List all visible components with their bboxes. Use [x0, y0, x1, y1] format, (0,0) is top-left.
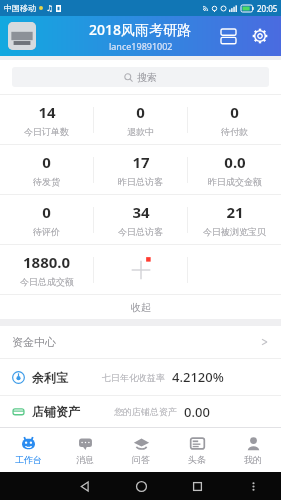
- button[interactable]: 问答: [113, 428, 169, 472]
- other: More: [225, 480, 281, 493]
- staticText: 我的: [244, 454, 262, 465]
- other: Recents: [169, 480, 225, 493]
- other: Home: [113, 480, 169, 493]
- staticText: 待付款: [221, 126, 248, 137]
- staticText: 消息: [76, 454, 94, 465]
- button[interactable]: 头条: [169, 428, 225, 472]
- staticText: 17: [132, 152, 150, 172]
- staticText: 您的店铺总资产: [114, 406, 177, 417]
- button[interactable]: Add: [94, 245, 187, 294]
- staticText: 今日总访客: [118, 226, 163, 237]
- other: Back: [57, 480, 113, 493]
- button[interactable]: 1880.0: [0, 245, 93, 294]
- button[interactable]: 17: [94, 145, 187, 194]
- staticText: 0.00: [184, 403, 210, 421]
- button[interactable]: Settings: [247, 23, 273, 49]
- staticText: 4.2120%: [172, 368, 224, 386]
- staticText: 待发货: [33, 176, 60, 187]
- button[interactable]: 我的: [225, 428, 281, 472]
- button[interactable]: 0: [0, 195, 93, 244]
- staticText: 余利宝: [32, 370, 68, 385]
- button[interactable]: Layout: [215, 23, 241, 49]
- button[interactable]: 资金中心: [12, 326, 269, 358]
- staticText: 待评价: [33, 226, 60, 237]
- button[interactable]: 搜索: [12, 67, 269, 87]
- staticText: 0.0: [224, 152, 246, 172]
- staticText: 退款中: [127, 126, 154, 137]
- staticText: 七日年化收益率: [102, 372, 165, 383]
- button[interactable]: 余利宝: [12, 359, 269, 395]
- button[interactable]: 21: [188, 195, 281, 244]
- button[interactable]: 34: [94, 195, 187, 244]
- staticText: 14: [38, 102, 56, 122]
- button[interactable]: 收起: [0, 295, 281, 319]
- staticText: 0: [230, 102, 239, 122]
- staticText: 头条: [188, 454, 206, 465]
- button[interactable]: 0: [188, 95, 281, 144]
- button[interactable]: 14: [0, 95, 93, 144]
- staticText: 今日订单数: [24, 126, 69, 137]
- staticText: 问答: [132, 454, 150, 465]
- button[interactable]: 店铺资产: [12, 396, 269, 427]
- staticText: 昨日总访客: [118, 176, 163, 187]
- staticText: 0: [136, 102, 145, 122]
- staticText: 收起: [131, 301, 151, 314]
- staticText: 中国移动: [4, 3, 36, 13]
- staticText: 0: [42, 152, 51, 172]
- staticText: 资金中心: [12, 335, 56, 349]
- staticText: 搜索: [137, 71, 157, 84]
- staticText: 昨日成交金额: [208, 176, 262, 187]
- button[interactable]: 0: [94, 95, 187, 144]
- staticText: 21: [226, 202, 244, 222]
- button[interactable]: 工作台: [0, 428, 57, 472]
- staticText: ♫: [46, 4, 54, 13]
- staticText: 今日被浏览宝贝: [203, 226, 266, 237]
- staticText: 1880.0: [23, 252, 71, 272]
- staticText: 今日总成交额: [20, 276, 74, 287]
- staticText: 店铺资产: [32, 404, 80, 419]
- button[interactable]: Avatar: [8, 22, 36, 50]
- button[interactable]: 0.0: [188, 145, 281, 194]
- staticText: 工作台: [15, 454, 42, 465]
- staticText: 34: [132, 202, 150, 222]
- button[interactable]: 0: [0, 145, 93, 194]
- staticText: 0: [42, 202, 51, 222]
- staticText: 2018风雨考研路: [89, 20, 192, 39]
- staticText: lance19891002: [109, 40, 173, 52]
- staticText: 20:05: [257, 3, 278, 14]
- button[interactable]: 消息: [57, 428, 113, 472]
